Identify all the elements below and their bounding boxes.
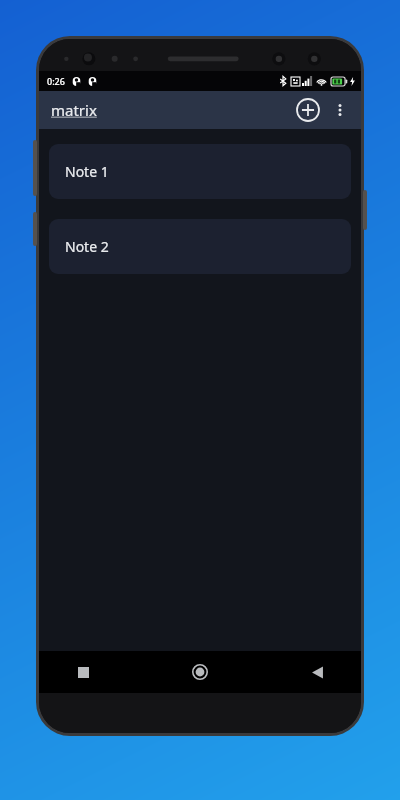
button[interactable]: matrix	[51, 100, 101, 120]
staticText: Note 2	[65, 237, 109, 256]
staticText: Note 1	[65, 162, 109, 181]
button[interactable]: More options	[325, 95, 355, 125]
button[interactable]: Note 2	[49, 219, 351, 274]
button[interactable]: Home	[182, 654, 218, 690]
button[interactable]: Add note	[291, 93, 325, 127]
button[interactable]: Note 1	[49, 144, 351, 199]
button[interactable]: Back	[299, 654, 335, 690]
staticText: 0:26	[47, 75, 65, 87]
button[interactable]: Recent apps	[65, 654, 101, 690]
